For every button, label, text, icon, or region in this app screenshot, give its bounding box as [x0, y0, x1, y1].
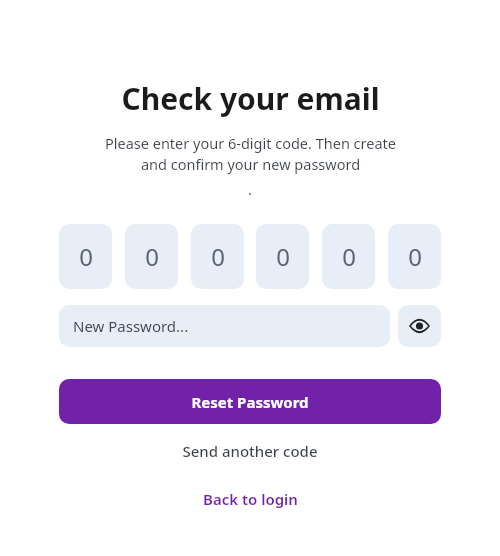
button[interactable]: Show password	[398, 305, 441, 347]
button[interactable]: 0	[388, 224, 441, 289]
button[interactable]: 0	[125, 224, 178, 289]
button[interactable]: 0	[256, 224, 309, 289]
staticText: .	[248, 179, 252, 199]
button[interactable]: 0	[59, 224, 112, 289]
staticText: 0	[276, 240, 290, 273]
staticText: 0	[79, 240, 93, 273]
staticText: Send another code	[182, 441, 318, 461]
staticText: 0	[145, 240, 159, 273]
button[interactable]: 0	[191, 224, 244, 289]
staticText: Check your email	[121, 78, 380, 119]
staticText: Reset Password	[191, 392, 309, 412]
staticText: Please enter your 6-digit code. Then cre…	[105, 133, 396, 175]
button[interactable]: Back to login	[189, 483, 312, 515]
staticText: New Password...	[73, 316, 189, 336]
button[interactable]: 0	[322, 224, 375, 289]
staticText: 0	[408, 240, 422, 273]
staticText: 0	[342, 240, 356, 273]
staticText: Back to login	[203, 489, 298, 509]
staticText: 0	[211, 240, 225, 273]
button[interactable]: Send another code	[168, 435, 332, 467]
button[interactable]: Reset Password	[59, 379, 441, 424]
button[interactable]: New Password...	[59, 305, 390, 347]
